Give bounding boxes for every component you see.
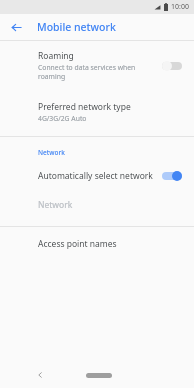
staticText: Access point names xyxy=(38,238,117,250)
button[interactable]: Access point names xyxy=(0,236,194,256)
staticText: Preferred network type xyxy=(38,101,131,113)
staticText: 10:00 xyxy=(171,2,189,12)
staticText: Automatically select network xyxy=(38,170,153,182)
button[interactable]: Automatically select network xyxy=(0,167,194,185)
button[interactable]: Switch on xyxy=(160,169,184,183)
button[interactable]: Back xyxy=(8,19,24,35)
button[interactable]: Back xyxy=(32,367,48,383)
button[interactable]: Home xyxy=(86,373,112,378)
button[interactable]: Preferred network type xyxy=(0,99,194,129)
button[interactable]: Network xyxy=(0,197,194,217)
staticText: Network xyxy=(38,148,65,157)
button[interactable]: Switch off xyxy=(160,59,184,73)
staticText: 4G/3G/2G Auto xyxy=(38,114,87,123)
button[interactable]: Roaming xyxy=(0,46,194,87)
staticText: Mobile network xyxy=(37,20,116,34)
staticText: roaming xyxy=(38,72,66,81)
staticText: Network xyxy=(38,199,73,211)
staticText: Roaming xyxy=(38,50,74,62)
staticText: Connect to data services when xyxy=(38,63,136,72)
